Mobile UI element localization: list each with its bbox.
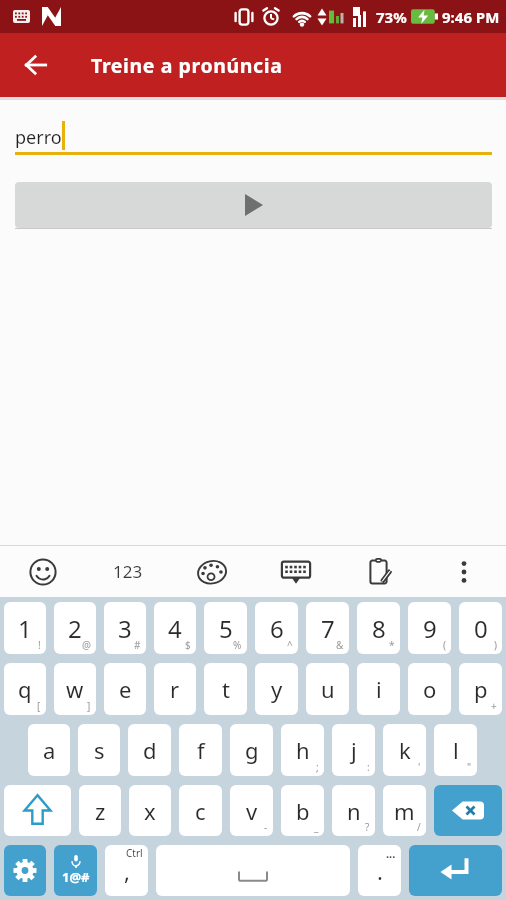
staticText: t xyxy=(222,674,230,704)
staticText: q xyxy=(18,674,32,704)
staticText: v xyxy=(246,796,258,826)
button[interactable]: 9 xyxy=(408,602,451,654)
staticText: g xyxy=(245,735,259,765)
button[interactable]: . xyxy=(358,845,401,896)
staticText: ] xyxy=(87,699,91,713)
staticText: z xyxy=(95,796,106,826)
button[interactable]: s xyxy=(78,724,120,776)
button[interactable]: j xyxy=(332,724,375,776)
button[interactable] xyxy=(422,546,506,597)
button[interactable]: h xyxy=(281,724,324,776)
button[interactable]: c xyxy=(179,785,222,836)
staticText: 5 xyxy=(219,612,233,645)
staticText: l xyxy=(453,735,459,765)
button[interactable]: z xyxy=(79,785,121,836)
button[interactable] xyxy=(254,546,338,597)
button[interactable]: p xyxy=(459,663,502,715)
button[interactable] xyxy=(4,845,46,896)
button[interactable] xyxy=(15,182,492,228)
staticText: d xyxy=(143,735,157,765)
button[interactable]: n xyxy=(332,785,375,836)
staticText: 7 xyxy=(321,612,335,645)
button[interactable]: x xyxy=(129,785,171,836)
button[interactable]: 1@# xyxy=(54,845,97,896)
button[interactable]: u xyxy=(306,663,349,715)
staticText: 4 xyxy=(168,612,182,645)
button[interactable]: i xyxy=(357,663,400,715)
staticText: . xyxy=(377,856,383,886)
staticText: k xyxy=(399,735,411,765)
staticText: s xyxy=(94,735,105,765)
button[interactable]: r xyxy=(154,663,196,715)
button[interactable]: o xyxy=(408,663,451,715)
staticText: h xyxy=(296,735,310,765)
staticText: 8 xyxy=(372,612,386,645)
staticText: # xyxy=(134,638,141,652)
staticText: / xyxy=(417,820,421,834)
staticText: ! xyxy=(38,638,41,652)
staticText: j xyxy=(351,735,357,765)
staticText: ' xyxy=(418,760,421,774)
button[interactable] xyxy=(170,546,254,597)
button[interactable] xyxy=(156,845,350,896)
button[interactable]: 123 xyxy=(85,546,170,597)
button[interactable] xyxy=(0,546,85,597)
staticText: p xyxy=(474,674,488,704)
button[interactable]: 1 xyxy=(4,602,46,654)
staticText: & xyxy=(336,638,344,652)
staticText: : xyxy=(367,760,370,774)
button[interactable]: f xyxy=(179,724,222,776)
staticText: [ xyxy=(37,699,41,713)
button[interactable]: g xyxy=(230,724,273,776)
button[interactable]: k xyxy=(383,724,426,776)
staticText: w xyxy=(66,674,84,704)
staticText: Ctrl xyxy=(126,846,143,860)
staticText: perro xyxy=(15,125,62,150)
button[interactable]: y xyxy=(255,663,298,715)
button[interactable] xyxy=(12,33,60,97)
button[interactable]: l xyxy=(434,724,477,776)
staticText: ... xyxy=(386,846,396,861)
button[interactable]: 7 xyxy=(306,602,349,654)
staticText: " xyxy=(467,760,472,774)
staticText: f xyxy=(197,735,205,765)
staticText: c xyxy=(195,796,206,826)
button[interactable] xyxy=(409,845,502,896)
staticText: 0 xyxy=(474,612,488,645)
button[interactable]: 2 xyxy=(54,602,96,654)
staticText: 1@# xyxy=(62,868,90,886)
button[interactable]: 0 xyxy=(459,602,502,654)
button[interactable]: v xyxy=(230,785,273,836)
button[interactable]: w xyxy=(54,663,96,715)
staticText: o xyxy=(423,674,437,704)
staticText: a xyxy=(43,735,56,765)
button[interactable]: 3 xyxy=(104,602,146,654)
button[interactable]: 4 xyxy=(154,602,196,654)
button[interactable]: d xyxy=(128,724,171,776)
button[interactable]: q xyxy=(4,663,46,715)
button[interactable]: t xyxy=(204,663,247,715)
button[interactable]: e xyxy=(104,663,146,715)
staticText: - xyxy=(264,820,268,834)
staticText: 123 xyxy=(113,560,143,583)
staticText: ? xyxy=(365,820,370,834)
staticText: _ xyxy=(314,820,319,834)
staticText: ^ xyxy=(287,638,293,652)
staticText: 6 xyxy=(270,612,284,645)
staticText: ( xyxy=(443,638,446,652)
staticText: 3 xyxy=(118,612,132,645)
staticText: r xyxy=(170,674,180,704)
button[interactable]: a xyxy=(28,724,70,776)
button[interactable]: 8 xyxy=(357,602,400,654)
staticText: $ xyxy=(185,638,191,652)
button[interactable]: 5 xyxy=(204,602,247,654)
button[interactable] xyxy=(338,546,422,597)
button[interactable]: 6 xyxy=(255,602,298,654)
button[interactable]: m xyxy=(383,785,426,836)
staticText: m xyxy=(394,796,415,826)
button[interactable]: , xyxy=(105,845,148,896)
button[interactable] xyxy=(4,785,71,836)
button[interactable]: b xyxy=(281,785,324,836)
staticText: 2 xyxy=(68,612,82,645)
button[interactable] xyxy=(434,785,502,836)
